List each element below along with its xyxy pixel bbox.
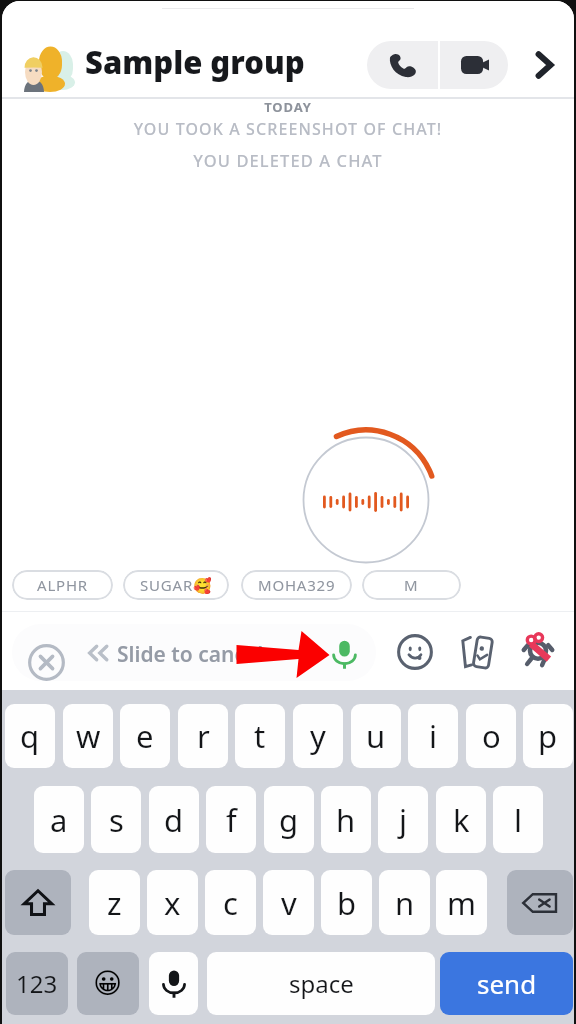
- button[interactable]: b: [321, 870, 372, 935]
- button[interactable]: g: [264, 786, 314, 853]
- staticText: d: [164, 799, 184, 841]
- staticText: YOU TOOK A SCREENSHOT OF CHAT!: [2, 118, 574, 140]
- button[interactable]: p: [523, 704, 573, 768]
- staticText: u: [366, 715, 386, 757]
- button[interactable]: Chat settings: [521, 41, 567, 89]
- staticText: y: [310, 715, 326, 757]
- staticText: ALPHR: [37, 575, 88, 595]
- staticText: w: [76, 715, 101, 757]
- button[interactable]: f: [206, 786, 256, 853]
- button[interactable]: o: [466, 704, 516, 768]
- staticText: Slide to cancel: [117, 640, 264, 669]
- staticText: j: [399, 799, 407, 841]
- button[interactable]: ALPHR: [12, 570, 113, 600]
- button[interactable]: v: [263, 870, 314, 935]
- button[interactable]: u: [351, 704, 401, 768]
- button[interactable]: s: [91, 786, 141, 853]
- staticText: g: [279, 799, 299, 841]
- staticText: Sample group: [85, 41, 305, 83]
- staticText: t: [254, 715, 266, 757]
- button[interactable]: c: [205, 870, 256, 935]
- staticText: m: [447, 882, 476, 924]
- button[interactable]: Video call: [440, 41, 508, 89]
- button[interactable]: h: [321, 786, 371, 853]
- button[interactable]: i: [408, 704, 458, 768]
- staticText: z: [107, 882, 122, 924]
- staticText: SUGAR🥰: [140, 575, 213, 595]
- button[interactable]: M: [362, 570, 461, 600]
- button[interactable]: n: [379, 870, 430, 935]
- button[interactable]: Shift: [5, 870, 71, 935]
- staticText: q: [20, 715, 40, 757]
- staticText: l: [514, 799, 522, 841]
- staticText: v: [281, 882, 297, 924]
- button[interactable]: Stickers: [457, 631, 498, 672]
- staticText: M: [404, 575, 419, 595]
- button[interactable]: SUGAR🥰: [123, 570, 229, 600]
- button[interactable]: a: [34, 786, 84, 853]
- button[interactable]: MOHA329: [241, 570, 352, 600]
- staticText: space: [289, 967, 354, 1000]
- button[interactable]: Emoji: [394, 631, 435, 672]
- button[interactable]: e: [120, 704, 170, 768]
- button[interactable]: Emoji keyboard: [77, 952, 139, 1015]
- staticText: c: [223, 882, 238, 924]
- button[interactable]: Voice call: [367, 41, 438, 89]
- button[interactable]: q: [5, 704, 55, 768]
- button[interactable]: y: [293, 704, 343, 768]
- button[interactable]: x: [147, 870, 198, 935]
- staticText: YOU DELETED A CHAT: [2, 149, 574, 171]
- button[interactable]: d: [149, 786, 199, 853]
- button[interactable]: r: [178, 704, 228, 768]
- staticText: o: [482, 715, 501, 757]
- button[interactable]: send: [440, 952, 573, 1015]
- staticText: f: [226, 799, 237, 841]
- button[interactable]: Record voice note: [324, 634, 365, 675]
- button[interactable]: Bitmoji: [517, 631, 558, 672]
- button[interactable]: Backspace: [507, 870, 573, 935]
- button[interactable]: [12, 624, 376, 681]
- button[interactable]: space: [207, 952, 435, 1015]
- staticText: 😀: [93, 967, 123, 1000]
- button[interactable]: Voice input: [149, 952, 198, 1015]
- button[interactable]: t: [235, 704, 285, 768]
- staticText: 123: [16, 967, 58, 1000]
- staticText: e: [136, 715, 154, 757]
- staticText: b: [337, 882, 357, 924]
- staticText: s: [109, 799, 124, 841]
- button[interactable]: k: [436, 786, 486, 853]
- button[interactable]: l: [493, 786, 543, 853]
- staticText: k: [453, 799, 470, 841]
- button[interactable]: 123: [6, 952, 68, 1015]
- staticText: p: [538, 715, 558, 757]
- staticText: h: [336, 799, 356, 841]
- staticText: r: [197, 715, 210, 757]
- staticText: TODAY: [2, 98, 574, 116]
- staticText: MOHA329: [258, 575, 336, 595]
- button[interactable]: w: [63, 704, 113, 768]
- staticText: i: [429, 715, 437, 757]
- button[interactable]: j: [378, 786, 428, 853]
- staticText: send: [477, 966, 537, 1001]
- staticText: a: [50, 799, 68, 841]
- staticText: x: [164, 882, 181, 924]
- button[interactable]: z: [89, 870, 140, 935]
- staticText: n: [395, 882, 415, 924]
- button[interactable]: m: [436, 870, 487, 935]
